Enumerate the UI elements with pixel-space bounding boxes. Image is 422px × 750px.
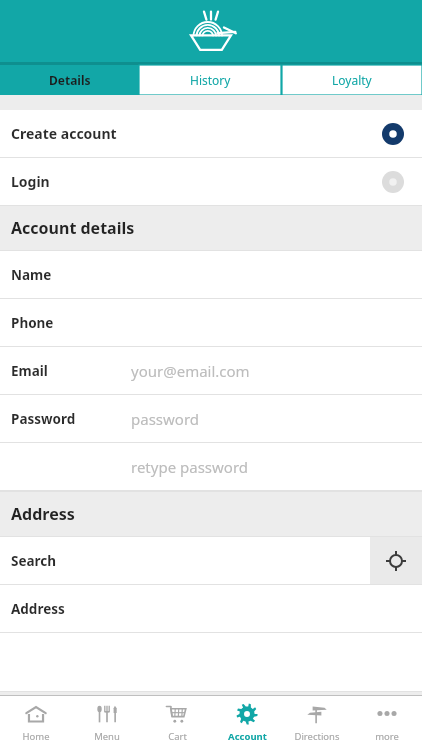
button[interactable]: Details xyxy=(0,65,139,95)
staticText: password xyxy=(131,409,199,429)
staticText: Address xyxy=(11,600,65,618)
button[interactable]: Create account xyxy=(0,110,422,157)
staticText: Menu xyxy=(94,730,120,743)
staticText: Account details xyxy=(11,217,135,239)
staticText: Login xyxy=(11,172,382,191)
staticText: Loyalty xyxy=(332,72,372,88)
button[interactable]: Search xyxy=(0,537,370,584)
staticText: retype password xyxy=(131,457,249,477)
staticText: Address xyxy=(11,503,75,525)
staticText: Cart xyxy=(168,730,187,743)
button[interactable]: Home xyxy=(0,696,71,750)
staticText: Details xyxy=(49,72,91,88)
button[interactable]: Address xyxy=(0,585,422,632)
button[interactable]: Email xyxy=(0,347,422,394)
staticText: Account xyxy=(228,730,267,743)
staticText: your@email.com xyxy=(131,361,250,381)
staticText: more xyxy=(375,730,399,743)
button[interactable]: Phone xyxy=(0,299,422,346)
button[interactable]: Account xyxy=(212,696,282,750)
staticText: Name xyxy=(11,266,52,284)
button[interactable]: Name xyxy=(0,251,422,298)
staticText: Password xyxy=(11,410,76,428)
button[interactable]: History xyxy=(139,65,281,95)
button[interactable]: Directions xyxy=(282,696,352,750)
button[interactable]: Use my location xyxy=(370,537,422,584)
button[interactable]: more xyxy=(352,696,422,750)
button[interactable]: Loyalty xyxy=(282,65,422,95)
staticText: Directions xyxy=(294,730,340,743)
button[interactable]: retype password xyxy=(0,443,422,490)
staticText: Email xyxy=(11,362,48,380)
button[interactable]: Cart xyxy=(142,696,212,750)
staticText: Create account xyxy=(11,124,382,143)
staticText: Search xyxy=(11,552,57,570)
staticText: Phone xyxy=(11,314,54,332)
staticText: History xyxy=(190,72,231,88)
button[interactable]: Menu xyxy=(71,696,142,750)
button[interactable]: Login xyxy=(0,158,422,205)
button[interactable]: Password xyxy=(0,395,422,442)
staticText: Home xyxy=(22,730,50,743)
